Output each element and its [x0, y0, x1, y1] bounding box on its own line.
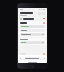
button[interactable]: Search	[18, 11, 47, 16]
button[interactable]	[20, 33, 45, 36]
button[interactable]	[19, 21, 46, 37]
button[interactable]	[18, 17, 47, 20]
button[interactable]	[19, 38, 46, 45]
button[interactable]	[20, 29, 45, 32]
button[interactable]: Secure	[19, 57, 46, 60]
button[interactable]	[20, 25, 45, 28]
button[interactable]	[20, 41, 45, 44]
button[interactable]	[18, 52, 47, 55]
